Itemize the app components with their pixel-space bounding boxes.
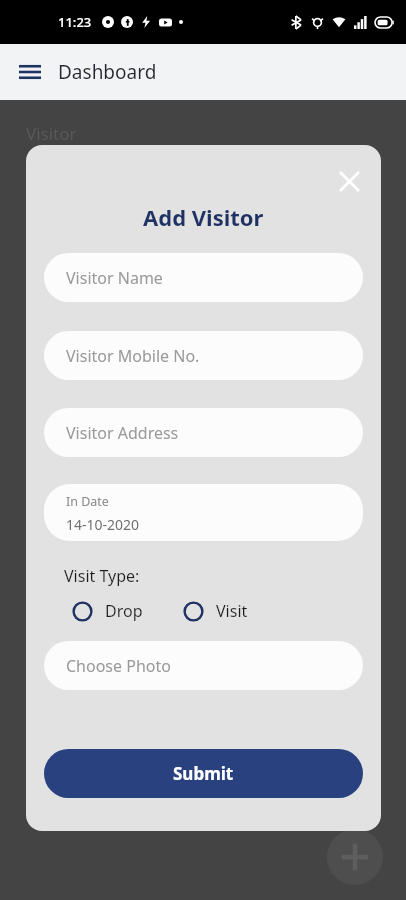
staticText: 14-10-2020 <box>66 515 140 534</box>
staticText: 11:23 <box>58 13 92 31</box>
button[interactable]: Visit <box>183 600 248 622</box>
button[interactable]: Visitor Name <box>44 253 363 302</box>
button[interactable]: Close <box>329 161 369 201</box>
button[interactable]: Submit <box>44 749 363 798</box>
staticText: Visit <box>216 600 248 622</box>
button[interactable]: Visitor Mobile No. <box>44 331 363 380</box>
button[interactable]: Open navigation menu <box>10 52 50 92</box>
button[interactable]: Add <box>327 829 383 885</box>
staticText: Add Visitor <box>143 202 264 232</box>
staticText: In Date <box>66 493 109 510</box>
staticText: Submit <box>173 762 234 785</box>
button[interactable]: Drop <box>72 600 143 622</box>
staticText: Dashboard <box>58 59 157 85</box>
staticText: Visitor Name <box>66 267 163 289</box>
staticText: Visitor Address <box>66 422 179 444</box>
button[interactable]: In Date <box>44 484 363 541</box>
button[interactable]: Choose Photo <box>44 641 363 690</box>
staticText: Visitor Mobile No. <box>66 345 200 367</box>
staticText: Choose Photo <box>66 655 171 677</box>
staticText: Visit Type: <box>64 565 140 587</box>
staticText: Visitor <box>26 122 77 145</box>
staticText: Drop <box>105 600 143 622</box>
button[interactable]: Visitor Address <box>44 408 363 457</box>
